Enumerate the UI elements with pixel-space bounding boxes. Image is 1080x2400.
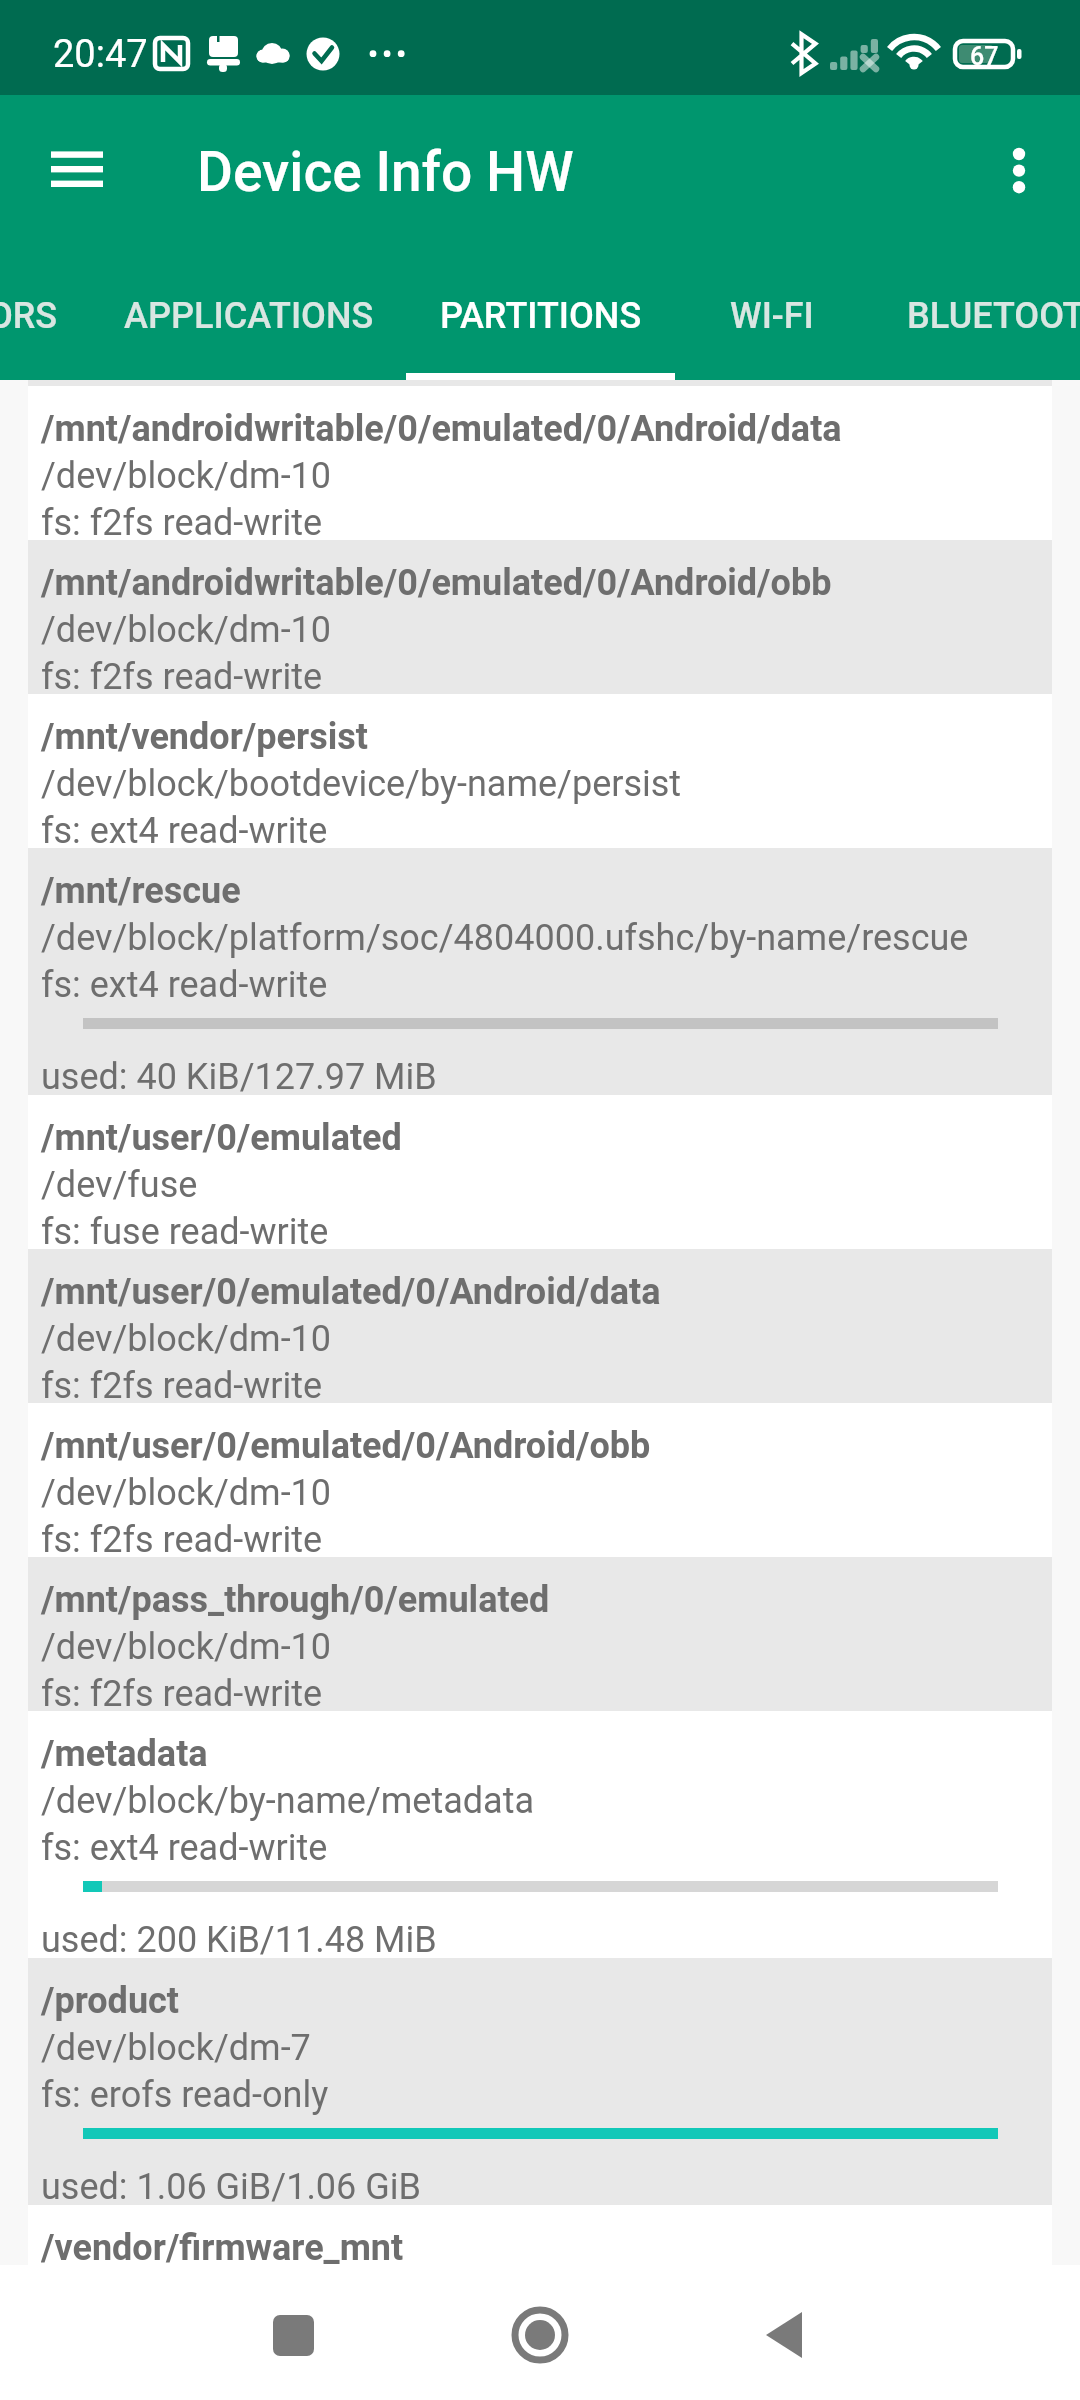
staticText: /product /dev/block/dm-7 fs: erofs read-…: [41, 1975, 329, 2116]
staticText: used: 1.06 GiB/1.06 GiB: [41, 2161, 421, 2208]
staticText: /mnt/user/0/emulated/0/Android/data /dev…: [41, 1266, 661, 1407]
staticText: /mnt/user/0/emulated /dev/fuse fs: fuse …: [41, 1112, 402, 1253]
button[interactable]: /mnt/pass_through/0/emulated /dev/block/…: [28, 1557, 1052, 1711]
staticText: 67: [970, 42, 999, 71]
button[interactable]: PARTITIONS: [416, 266, 666, 366]
staticText: /mnt/pass_through/0/emulated /dev/block/…: [41, 1574, 550, 1715]
button[interactable]: /mnt/androidwritable/0/emulated/0/Androi…: [28, 386, 1052, 540]
button[interactable]: /mnt/user/0/emulated/0/Android/obb /dev/…: [28, 1403, 1052, 1557]
staticText: /metadata /dev/block/by-name/metadata fs…: [41, 1728, 534, 1869]
button[interactable]: WI-FI: [706, 266, 838, 366]
staticText: WI-FI: [730, 295, 814, 337]
button[interactable]: /vendor/firmware_mnt /dev/block/by-name/…: [28, 2205, 1052, 2265]
button[interactable]: ORS: [0, 266, 82, 366]
button[interactable]: /mnt/rescue /dev/block/platform/soc/4804…: [28, 848, 1052, 1095]
staticText: /vendor/firmware_mnt /dev/block/by-name/…: [41, 2222, 421, 2282]
staticText: /mnt/user/0/emulated/0/Android/obb /dev/…: [41, 1420, 651, 1561]
button[interactable]: /mnt/user/0/emulated /dev/fuse fs: fuse …: [28, 1095, 1052, 1249]
staticText: APPLICATIONS: [124, 295, 374, 337]
button[interactable]: /mnt/vendor/persist /dev/block/bootdevic…: [28, 694, 1052, 848]
staticText: Device Info HW: [197, 140, 574, 204]
staticText: 20:47: [53, 32, 148, 77]
staticText: /mnt/rescue /dev/block/platform/soc/4804…: [41, 865, 969, 1006]
button[interactable]: /metadata /dev/block/by-name/metadata fs…: [28, 1711, 1052, 1958]
button[interactable]: APPLICATIONS: [100, 266, 398, 366]
staticText: PARTITIONS: [440, 295, 642, 337]
staticText: /mnt/androidwritable/0/emulated/0/Androi…: [41, 557, 832, 698]
button[interactable]: /mnt/user/0/emulated/0/Android/data /dev…: [28, 1249, 1052, 1403]
button[interactable]: /product /dev/block/dm-7 fs: erofs read-…: [28, 1958, 1052, 2205]
staticText: ORS: [0, 295, 58, 337]
staticText: /mnt/vendor/persist /dev/block/bootdevic…: [41, 711, 682, 852]
button[interactable]: Back: [724, 2275, 844, 2395]
staticText: /mnt/androidwritable/0/emulated/0/Androi…: [41, 403, 842, 544]
button[interactable]: More options: [965, 120, 1077, 232]
staticText: used: 40 KiB/127.97 MiB: [41, 1051, 437, 1098]
staticText: used: 200 KiB/11.48 MiB: [41, 1914, 437, 1961]
button[interactable]: Home: [480, 2275, 600, 2395]
staticText: BLUETOOTH: [907, 295, 1080, 337]
button[interactable]: /mnt/androidwritable/0/emulated/0/Androi…: [28, 540, 1052, 694]
button[interactable]: BLUETOOTH: [883, 266, 1080, 366]
button[interactable]: Recent apps: [233, 2275, 353, 2395]
button[interactable]: Open navigation drawer: [20, 120, 132, 232]
